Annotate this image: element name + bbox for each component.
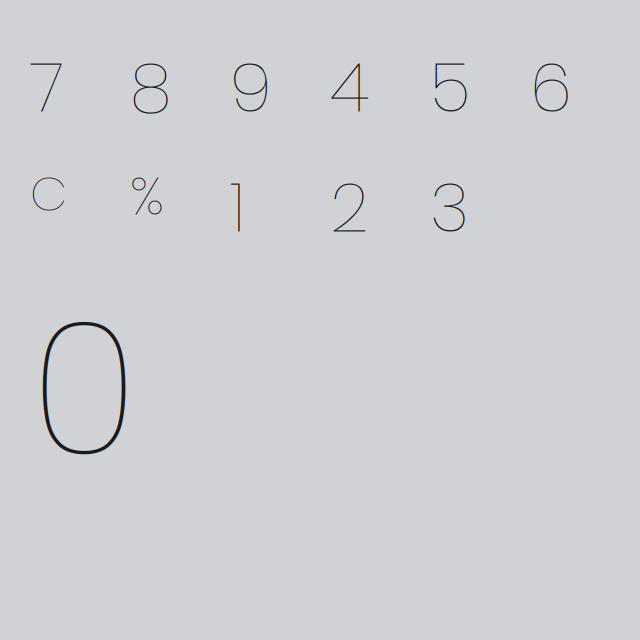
staticText: 8 xyxy=(130,40,171,135)
staticText: 3 xyxy=(430,160,469,255)
staticText: 4 xyxy=(330,40,369,135)
staticText: % xyxy=(130,160,164,233)
staticText: 5 xyxy=(430,40,470,135)
staticText: 7 xyxy=(30,40,64,135)
staticText: 6 xyxy=(530,40,572,135)
staticText: 1 xyxy=(230,160,245,255)
staticText: 2 xyxy=(330,160,369,255)
staticText: 0 xyxy=(30,260,138,518)
staticText: 9 xyxy=(230,40,272,135)
staticText: C xyxy=(30,160,67,227)
